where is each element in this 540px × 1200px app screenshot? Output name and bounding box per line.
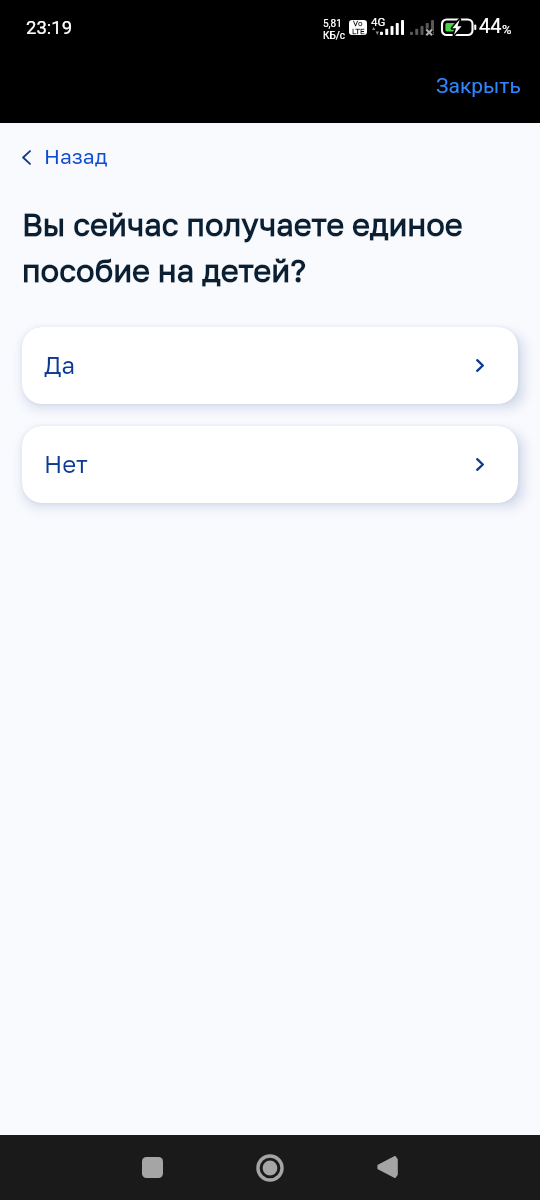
button[interactable]: Закрыть <box>430 69 527 104</box>
button[interactable]: Home <box>240 1137 300 1199</box>
staticText: КБ/с <box>323 30 346 42</box>
button[interactable]: Назад <box>10 135 126 171</box>
staticText: % <box>502 22 512 37</box>
staticText: 23:19 <box>26 17 73 39</box>
button[interactable]: Back <box>357 1136 417 1198</box>
button[interactable]: Recent apps <box>122 1136 182 1198</box>
staticText: 44 <box>479 14 502 37</box>
staticText: 4G <box>371 15 386 28</box>
staticText: Вы сейчас получаете единое пособие на де… <box>22 198 496 290</box>
staticText: Vo <box>353 20 363 28</box>
button[interactable]: Нет <box>22 426 518 503</box>
staticText: Да <box>44 350 76 379</box>
staticText: Назад <box>44 143 108 168</box>
staticText: LTE <box>352 27 365 35</box>
button[interactable]: Да <box>22 327 518 404</box>
staticText: 5,81 <box>323 18 342 30</box>
staticText: Нет <box>44 449 88 478</box>
staticText: Закрыть <box>436 74 521 99</box>
